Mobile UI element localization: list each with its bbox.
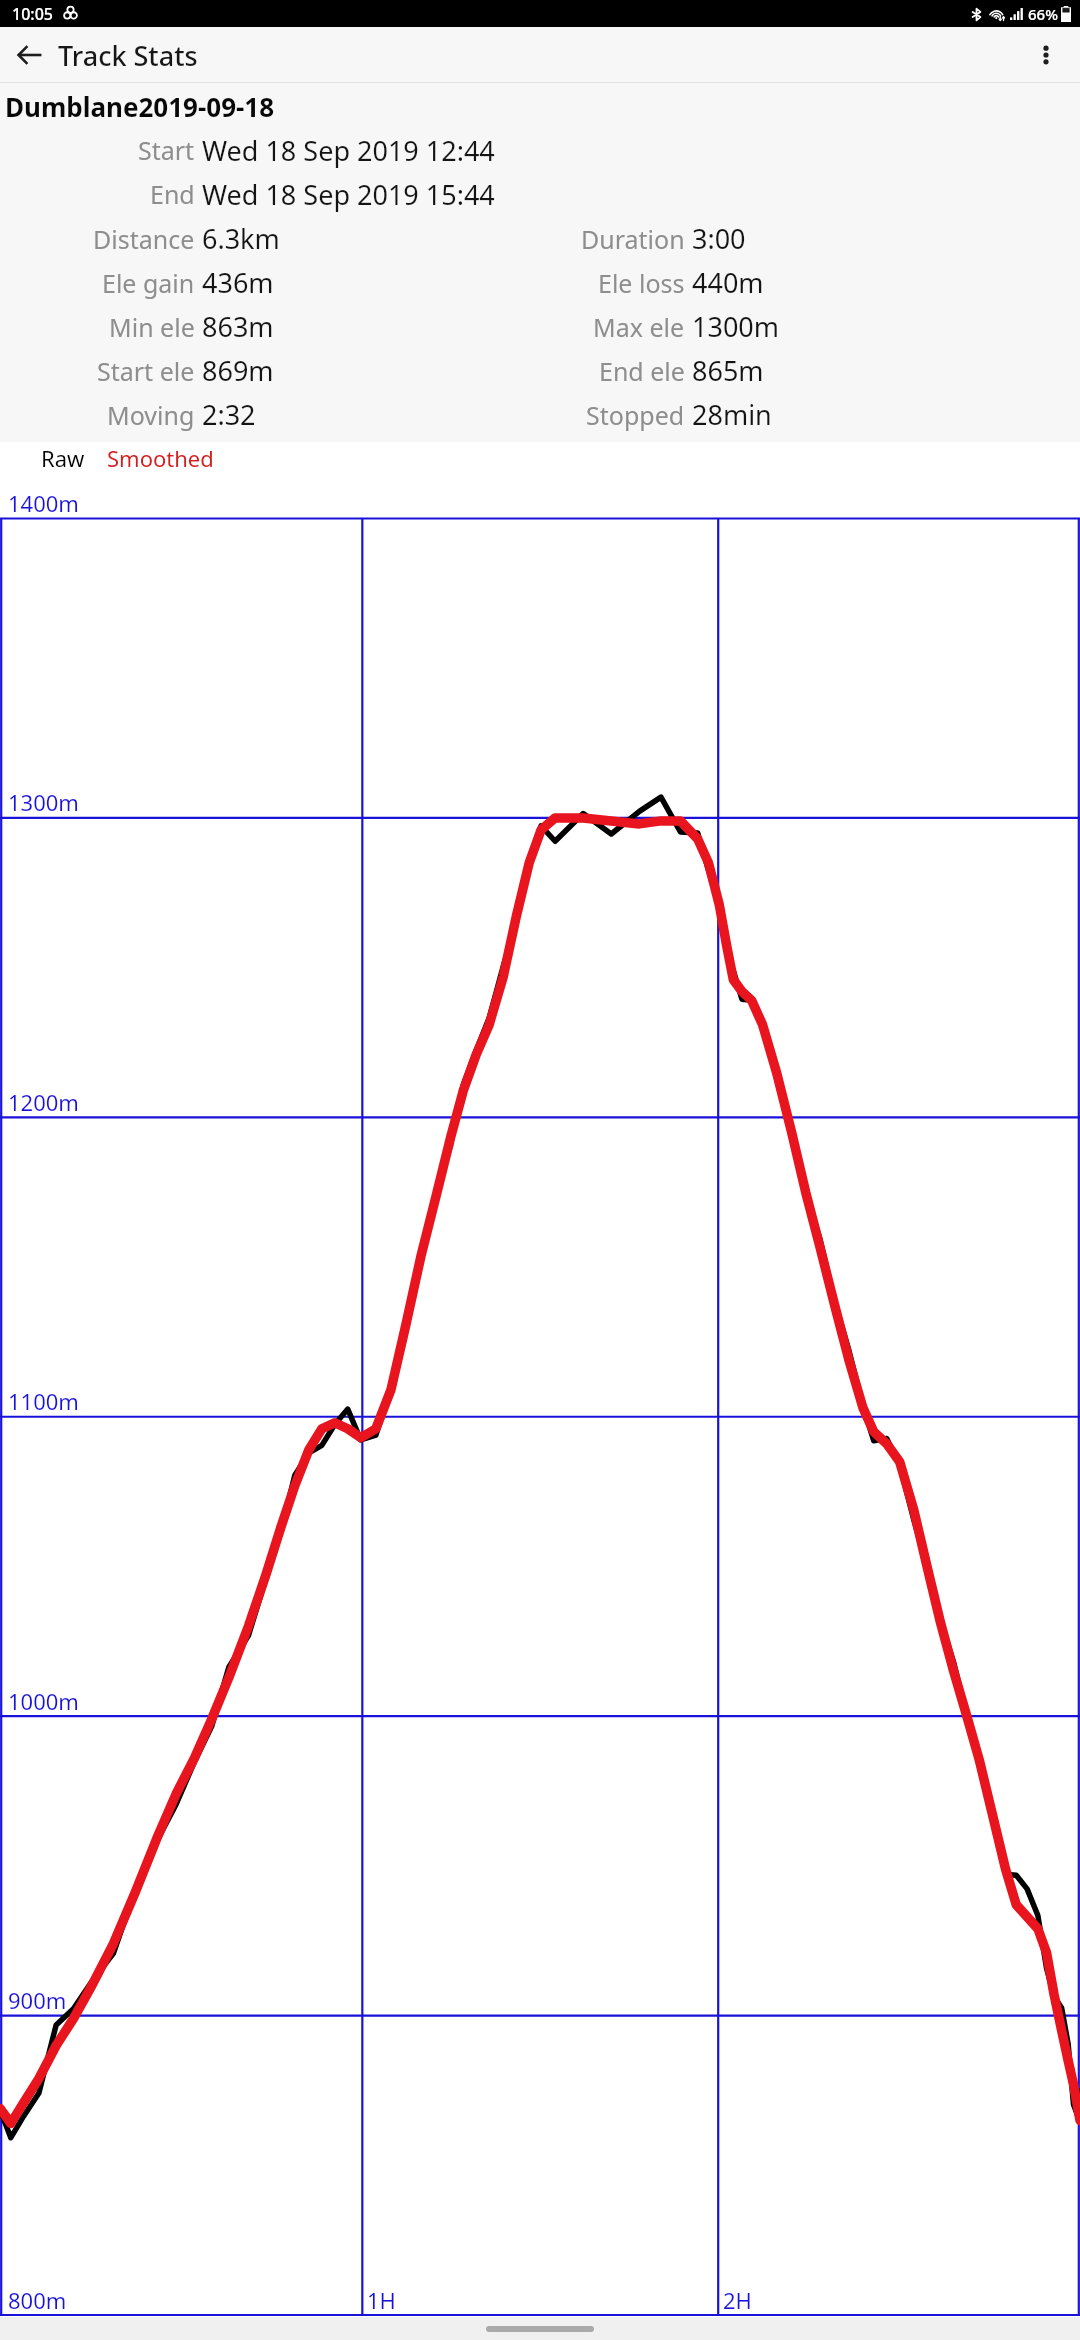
staticText: Ele gain	[102, 266, 195, 300]
staticText: Raw	[41, 443, 85, 473]
staticText: 1300m	[8, 787, 79, 817]
staticText: 800m	[8, 2285, 67, 2315]
staticText: 1100m	[8, 1386, 79, 1416]
staticText: Duration	[581, 222, 685, 256]
staticText: 1000m	[8, 1686, 79, 1716]
staticText: 28min	[692, 396, 772, 433]
staticText: Moving	[107, 398, 195, 432]
staticText: 6.3km	[202, 220, 280, 257]
staticText: Distance	[93, 222, 195, 256]
staticText: Start	[138, 133, 195, 167]
staticText: 2:32	[202, 396, 256, 433]
staticText: 1400m	[8, 488, 79, 518]
staticText: Start ele	[97, 354, 195, 388]
staticText: Track Stats	[58, 37, 198, 74]
staticText: 1H	[367, 2285, 396, 2315]
staticText: End ele	[599, 354, 685, 388]
staticText: 436m	[202, 264, 274, 301]
staticText: 865m	[692, 352, 764, 389]
staticText: Max ele	[593, 310, 685, 344]
staticText: 869m	[202, 352, 274, 389]
staticText: 66%	[1028, 4, 1058, 24]
staticText: Dumblane2019-09-18	[5, 89, 275, 124]
staticText: 440m	[692, 264, 764, 301]
staticText: 863m	[202, 308, 274, 345]
button[interactable]: Back	[6, 31, 54, 79]
staticText: 10:05	[12, 3, 53, 25]
staticText: 2H	[723, 2285, 752, 2315]
staticText: Min ele	[109, 310, 195, 344]
staticText: Wed 18 Sep 2019 15:44	[202, 176, 495, 213]
staticText: 900m	[8, 1985, 67, 2015]
button[interactable]: More options	[1022, 31, 1070, 79]
staticText: End	[150, 177, 195, 211]
staticText: Smoothed	[107, 443, 214, 473]
staticText: Ele loss	[598, 266, 685, 300]
staticText: 3:00	[692, 220, 746, 257]
staticText: Wed 18 Sep 2019 12:44	[202, 132, 495, 169]
staticText: 1300m	[692, 308, 780, 345]
staticText: 1200m	[8, 1087, 79, 1117]
staticText: Stopped	[586, 398, 685, 432]
